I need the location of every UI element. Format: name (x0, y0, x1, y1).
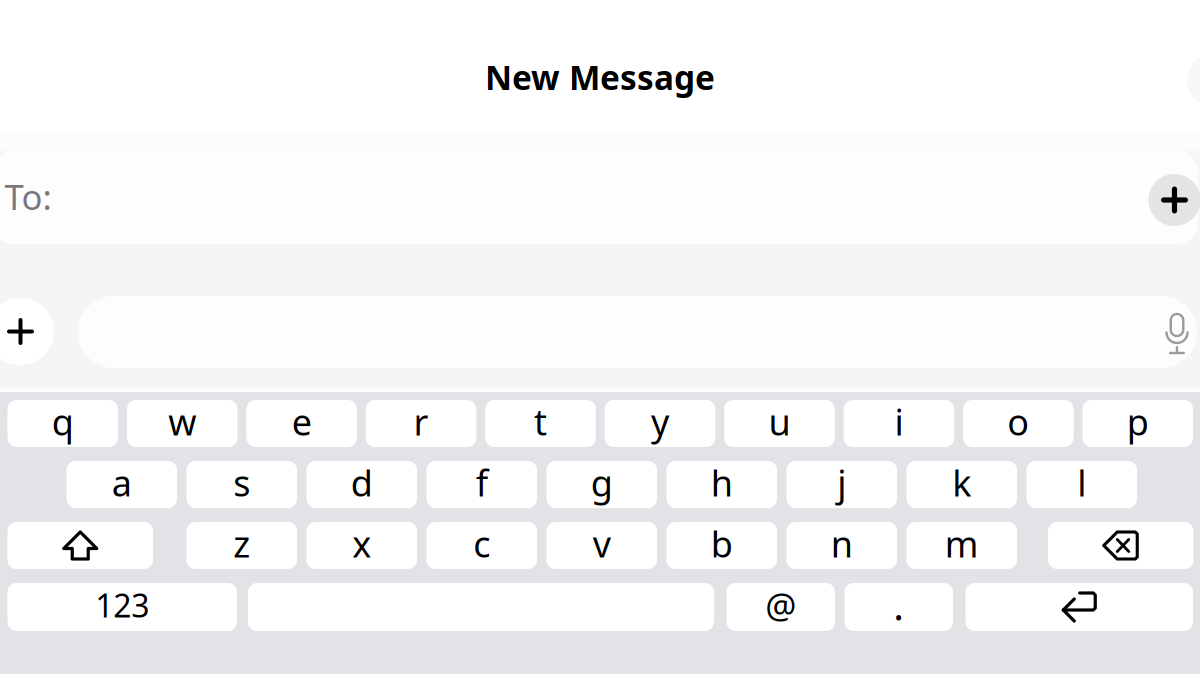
staticText: h (711, 459, 733, 506)
staticText: 123 (95, 584, 149, 626)
staticText: l (1077, 459, 1086, 506)
button[interactable]: Delete (1048, 522, 1193, 569)
staticText: @ (765, 582, 796, 628)
button[interactable]: u (724, 400, 835, 447)
staticText: v (593, 520, 611, 567)
button[interactable]: Add contact (1148, 174, 1200, 226)
button[interactable]: d (306, 461, 417, 508)
button[interactable]: m (906, 522, 1017, 569)
button[interactable]: s (186, 461, 297, 508)
button[interactable]: q (7, 400, 118, 447)
staticText: r (414, 398, 429, 445)
staticText: c (473, 520, 490, 567)
staticText: y (651, 398, 669, 445)
staticText: p (1127, 398, 1149, 445)
staticText: m (945, 520, 979, 567)
staticText: d (351, 459, 373, 506)
button[interactable]: r (366, 400, 476, 447)
staticText: n (831, 520, 853, 567)
staticText: g (591, 459, 613, 506)
staticText: t (534, 398, 547, 445)
button[interactable]: a (66, 461, 177, 508)
button[interactable]: . (844, 583, 953, 631)
staticText: j (837, 459, 846, 506)
button[interactable]: @ (726, 583, 835, 631)
button[interactable]: g (546, 461, 657, 508)
button[interactable]: Message field (78, 296, 1197, 368)
button[interactable]: x (306, 522, 417, 569)
button[interactable]: w (127, 400, 237, 447)
button[interactable]: o (963, 400, 1074, 447)
staticText: u (768, 398, 790, 445)
staticText: f (476, 459, 488, 506)
staticText: q (52, 398, 74, 445)
button[interactable]: Add attachment (0, 298, 54, 365)
button[interactable]: 123 (7, 583, 237, 631)
button[interactable]: f (426, 461, 537, 508)
staticText: To: (4, 173, 51, 219)
staticText: i (894, 398, 903, 445)
button[interactable]: k (906, 461, 1017, 508)
button[interactable]: Shift (7, 522, 153, 569)
staticText: . (893, 578, 904, 631)
staticText: z (233, 520, 250, 567)
staticText: b (711, 520, 733, 567)
button[interactable]: t (485, 400, 596, 447)
button[interactable]: c (426, 522, 537, 569)
button[interactable]: l (1026, 461, 1137, 508)
staticText: s (233, 459, 250, 506)
button[interactable]: i (844, 400, 954, 447)
button[interactable]: n (786, 522, 897, 569)
button[interactable]: j (786, 461, 897, 508)
button[interactable]: Return (965, 583, 1193, 631)
button[interactable]: z (186, 522, 297, 569)
button[interactable]: b (666, 522, 777, 569)
staticText: a (112, 459, 132, 506)
button[interactable]: e (246, 400, 357, 447)
staticText: k (952, 459, 971, 506)
staticText: x (352, 520, 371, 567)
button[interactable]: Close (1187, 54, 1200, 107)
staticText: New Message (485, 55, 715, 99)
button[interactable]: h (666, 461, 777, 508)
staticText: o (1007, 398, 1029, 445)
staticText: w (168, 398, 196, 445)
button[interactable]: y (605, 400, 715, 447)
button[interactable]: v (546, 522, 657, 569)
button[interactable]: p (1082, 400, 1193, 447)
staticText: e (292, 398, 312, 445)
